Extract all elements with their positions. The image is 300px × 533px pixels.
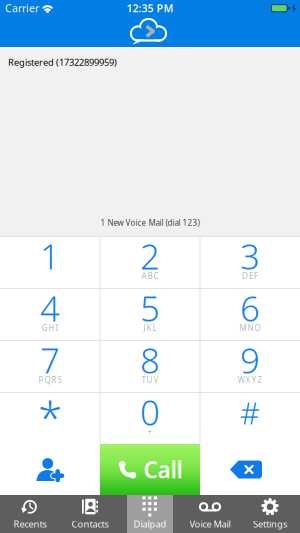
staticText: + (147, 426, 152, 437)
button[interactable]: 5 (100, 288, 200, 340)
button[interactable]: 2 (100, 236, 200, 288)
staticText: # (240, 392, 260, 433)
staticText: 8 (140, 337, 160, 383)
staticText: Call (143, 454, 182, 484)
staticText: 2 (140, 233, 160, 279)
staticText: Registered (17322899959) (8, 56, 117, 68)
staticText: T U V (141, 374, 158, 385)
button[interactable]: 1 (0, 236, 100, 288)
staticText: 12:35 PM (126, 1, 173, 15)
staticText: 3 (240, 233, 260, 279)
button[interactable]: Voice Mail (180, 495, 240, 533)
button[interactable]: 0 (100, 392, 200, 444)
staticText: 5 (140, 285, 160, 331)
button[interactable]: 8 (100, 340, 200, 392)
staticText: 9 (240, 337, 260, 383)
button[interactable]: Settings (240, 495, 300, 533)
staticText: D E F (242, 270, 258, 281)
staticText: J K L (143, 322, 156, 333)
staticText: M N O (239, 322, 260, 333)
staticText: 6 (240, 285, 260, 331)
staticText: Dialpad (133, 518, 166, 530)
staticText: P Q R S (38, 374, 61, 385)
button[interactable]: 4 (0, 288, 100, 340)
staticText: A B C (141, 270, 158, 281)
staticText: G H I (41, 322, 58, 333)
button[interactable]: Contacts (60, 495, 120, 533)
staticText: 0 (140, 389, 160, 435)
button[interactable]: 9 (200, 340, 300, 392)
button[interactable]: 7 (0, 340, 100, 392)
button[interactable]: Call (100, 444, 200, 495)
staticText: 1 (40, 233, 60, 279)
staticText: Voice Mail (189, 518, 230, 530)
button[interactable]: Delete (200, 444, 300, 495)
staticText: 7 (40, 337, 60, 383)
staticText: Carrier (5, 1, 39, 15)
staticText: * (38, 388, 62, 447)
button[interactable]: Dialpad (120, 495, 180, 533)
button[interactable]: Recents (0, 495, 60, 533)
button[interactable]: 6 (200, 288, 300, 340)
button[interactable]: Add Contact (0, 444, 100, 495)
staticText: 1 New Voice Mail (dial 123) (100, 217, 199, 228)
button[interactable]: 3 (200, 236, 300, 288)
button[interactable]: # (200, 392, 300, 444)
button[interactable]: * (0, 392, 100, 444)
staticText: Settings (253, 518, 287, 530)
staticText: 4 (40, 285, 60, 331)
staticText: Recents (13, 518, 46, 530)
staticText: W X Y Z (237, 374, 262, 385)
staticText: Contacts (71, 518, 108, 530)
